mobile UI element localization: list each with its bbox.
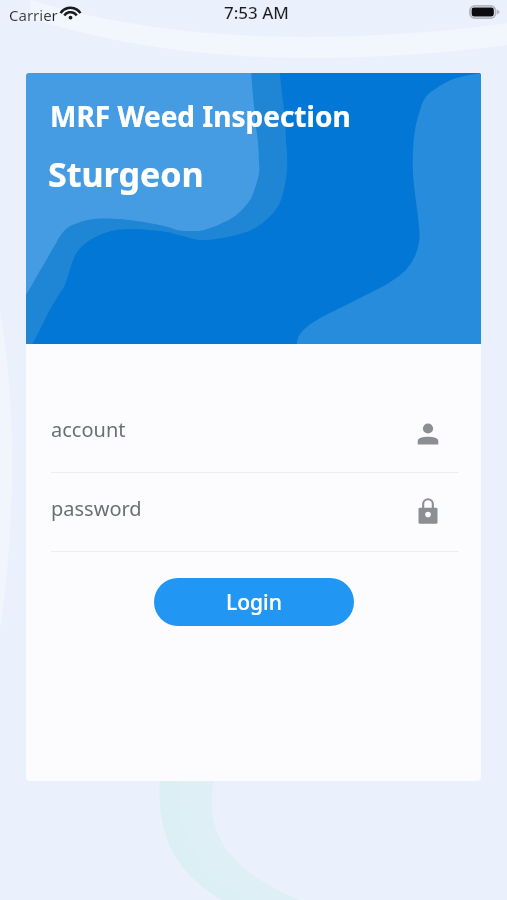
- button[interactable]: password: [51, 495, 458, 539]
- staticText: 7:53 AM: [224, 1, 289, 24]
- button[interactable]: account: [51, 416, 458, 460]
- staticText: account: [51, 416, 126, 443]
- other: Password: [415, 498, 441, 524]
- staticText: MRF Weed Inspection: [50, 97, 351, 135]
- staticText: Login: [226, 588, 282, 617]
- staticText: password: [51, 495, 142, 522]
- staticText: Sturgeon: [48, 151, 204, 197]
- button[interactable]: Login: [154, 578, 354, 626]
- staticText: Carrier: [9, 5, 58, 25]
- other: Account: [416, 422, 440, 446]
